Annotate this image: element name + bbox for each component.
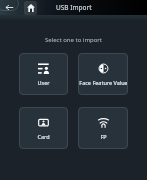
button[interactable]: Home [24,1,37,15]
staticText: Face Feature Value [79,79,128,86]
staticText: USB Import [56,3,92,12]
staticText: User [37,79,50,86]
button[interactable]: Face Feature Value [78,53,128,95]
button[interactable]: User [19,53,68,95]
button[interactable]: Card [19,107,68,149]
staticText: FP [100,133,107,140]
button[interactable]: Back [0,0,19,11]
button[interactable]: FP [78,107,128,149]
staticText: Select one to import [0,36,147,44]
staticText: Card [37,133,50,140]
